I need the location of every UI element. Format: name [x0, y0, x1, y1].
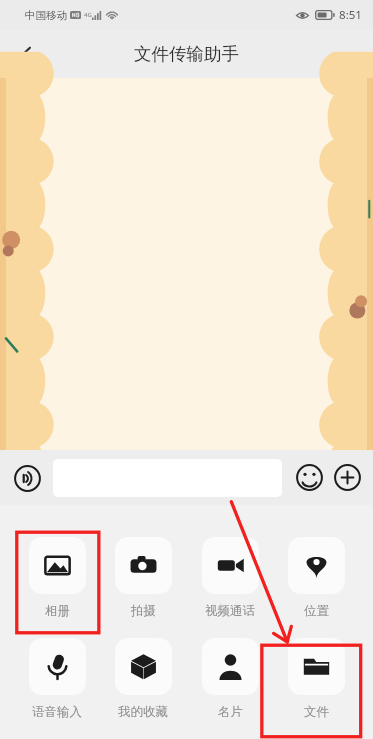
- staticText: 中国移动: [25, 9, 67, 22]
- staticText: 8:51: [339, 7, 362, 23]
- button[interactable]: More options: [321, 33, 363, 75]
- button[interactable]: 名片: [193, 638, 267, 720]
- staticText: 相册: [45, 603, 70, 619]
- button[interactable]: 我的收藏: [106, 638, 180, 720]
- button[interactable]: Emoji: [293, 461, 326, 494]
- staticText: 文件传输助手: [134, 43, 239, 65]
- button[interactable]: Back: [5, 33, 47, 75]
- staticText: 拍摄: [131, 603, 156, 619]
- staticText: 4G: [84, 11, 92, 19]
- button[interactable]: 位置: [279, 537, 353, 619]
- button[interactable]: 文件: [279, 638, 353, 720]
- button[interactable]: More actions: [331, 461, 364, 494]
- staticText: 名片: [218, 704, 243, 720]
- button[interactable]: 语音输入: [20, 638, 94, 720]
- button[interactable]: 相册: [20, 537, 94, 619]
- button[interactable]: 拍摄: [106, 537, 180, 619]
- staticText: 位置: [304, 603, 329, 619]
- staticText: 我的收藏: [118, 704, 168, 720]
- staticText: 语音输入: [32, 704, 82, 720]
- staticText: 视频通话: [205, 603, 255, 619]
- button[interactable]: 视频通话: [193, 537, 267, 619]
- button[interactable]: Voice message: [9, 460, 45, 496]
- staticText: 文件: [304, 704, 329, 720]
